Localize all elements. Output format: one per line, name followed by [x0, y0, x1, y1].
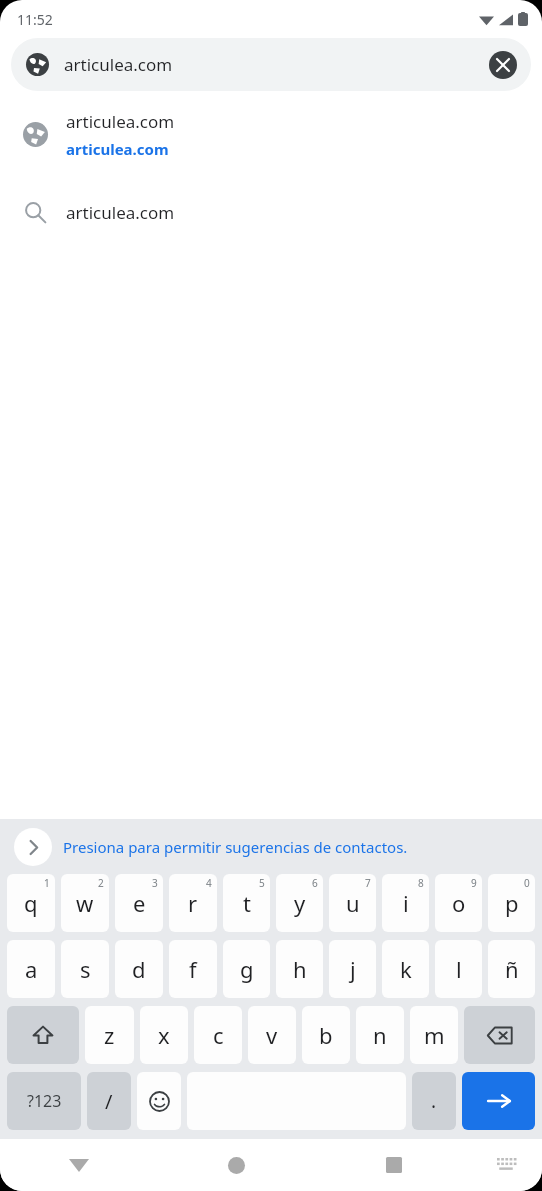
- staticText: q: [24, 888, 38, 918]
- button[interactable]: i: [382, 874, 429, 932]
- staticText: g: [240, 954, 254, 984]
- button[interactable]: x: [140, 1006, 188, 1064]
- staticText: .: [431, 1088, 437, 1114]
- staticText: k: [400, 954, 412, 984]
- button[interactable]: Backspace: [464, 1006, 535, 1064]
- button[interactable]: b: [302, 1006, 350, 1064]
- button[interactable]: m: [410, 1006, 458, 1064]
- staticText: w: [76, 888, 94, 918]
- staticText: f: [189, 954, 197, 984]
- button[interactable]: v: [248, 1006, 296, 1064]
- button[interactable]: u: [329, 874, 376, 932]
- button[interactable]: k: [382, 940, 429, 998]
- staticText: n: [373, 1020, 387, 1050]
- button[interactable]: .: [412, 1072, 456, 1130]
- staticText: s: [80, 954, 91, 984]
- staticText: e: [133, 888, 146, 918]
- button[interactable]: a: [7, 940, 55, 998]
- button[interactable]: y: [276, 874, 323, 932]
- button[interactable]: articulea.com: [0, 101, 542, 167]
- button[interactable]: n: [356, 1006, 404, 1064]
- button[interactable]: o: [435, 874, 482, 932]
- staticText: ñ: [505, 954, 519, 984]
- button[interactable]: w: [61, 874, 109, 932]
- staticText: 4: [206, 876, 212, 890]
- staticText: i: [403, 888, 409, 918]
- staticText: articulea.com: [66, 201, 175, 224]
- staticText: 11:52: [17, 10, 53, 29]
- button[interactable]: g: [223, 940, 270, 998]
- staticText: h: [293, 954, 307, 984]
- staticText: z: [104, 1020, 115, 1050]
- button[interactable]: c: [194, 1006, 242, 1064]
- button[interactable]: z: [85, 1006, 134, 1064]
- button[interactable]: j: [329, 940, 376, 998]
- staticText: j: [350, 954, 356, 984]
- staticText: /: [105, 1088, 113, 1115]
- staticText: b: [319, 1020, 333, 1050]
- staticText: 1: [44, 876, 50, 890]
- button[interactable]: f: [169, 940, 217, 998]
- staticText: o: [452, 888, 466, 918]
- button[interactable]: articulea.com: [0, 189, 542, 235]
- staticText: v: [266, 1020, 278, 1050]
- staticText: ?123: [27, 1090, 62, 1112]
- button[interactable]: h: [276, 940, 323, 998]
- button[interactable]: articulea.com: [11, 38, 531, 91]
- staticText: p: [505, 888, 519, 918]
- staticText: articulea.com: [64, 53, 173, 76]
- button[interactable]: r: [169, 874, 217, 932]
- staticText: c: [213, 1020, 224, 1050]
- button[interactable]: e: [115, 874, 163, 932]
- staticText: 5: [259, 876, 265, 890]
- button[interactable]: Go: [462, 1072, 535, 1130]
- button[interactable]: Presiona para permitir sugerencias de co…: [0, 819, 542, 874]
- button[interactable]: t: [223, 874, 270, 932]
- staticText: u: [346, 888, 360, 918]
- button[interactable]: p: [488, 874, 535, 932]
- button[interactable]: q: [7, 874, 55, 932]
- staticText: Presiona para permitir sugerencias de co…: [63, 837, 408, 857]
- staticText: m: [424, 1020, 445, 1050]
- staticText: 8: [418, 876, 424, 890]
- staticText: 9: [471, 876, 477, 890]
- button[interactable]: /: [87, 1072, 131, 1130]
- staticText: 7: [365, 876, 371, 890]
- staticText: d: [132, 954, 146, 984]
- staticText: 2: [98, 876, 104, 890]
- button[interactable]: Shift: [7, 1006, 79, 1064]
- staticText: x: [158, 1020, 170, 1050]
- button[interactable]: Back: [0, 1139, 158, 1191]
- staticText: y: [294, 888, 306, 918]
- button[interactable]: d: [115, 940, 163, 998]
- button[interactable]: s: [61, 940, 109, 998]
- button[interactable]: Home: [158, 1139, 315, 1191]
- staticText: articulea.com: [66, 139, 169, 159]
- button[interactable]: l: [435, 940, 482, 998]
- staticText: 0: [524, 876, 530, 890]
- staticText: articulea.com: [66, 110, 175, 133]
- staticText: a: [25, 954, 38, 984]
- staticText: 3: [152, 876, 158, 890]
- button[interactable]: ?123: [7, 1072, 81, 1130]
- button[interactable]: ñ: [488, 940, 535, 998]
- button[interactable]: Emoji: [137, 1072, 181, 1130]
- button[interactable]: Clear: [489, 51, 517, 79]
- button[interactable]: Switch keyboard: [472, 1139, 542, 1191]
- button[interactable]: Recents: [315, 1139, 472, 1191]
- staticText: 6: [312, 876, 318, 890]
- staticText: r: [188, 888, 198, 918]
- staticText: l: [456, 954, 462, 984]
- staticText: t: [243, 888, 251, 918]
